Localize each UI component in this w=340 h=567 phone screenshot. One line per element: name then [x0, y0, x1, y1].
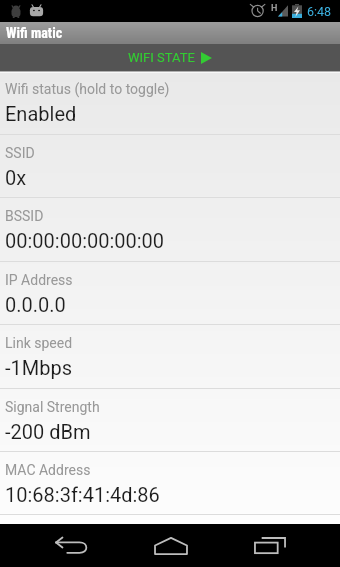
- button[interactable]: BSSID: [0, 198, 340, 262]
- button[interactable]: WIFI STATE: [0, 44, 340, 71]
- staticText: 6:48: [307, 4, 332, 19]
- button[interactable]: Home: [121, 524, 220, 567]
- button[interactable]: Wifi status (hold to toggle): [0, 71, 340, 135]
- button[interactable]: MAC Address: [0, 452, 340, 515]
- button[interactable]: Back: [22, 524, 121, 567]
- staticText: Link speed: [5, 335, 73, 351]
- staticText: 0.0.0.0: [5, 293, 66, 316]
- staticText: Wifi status (hold to toggle): [5, 81, 170, 97]
- button[interactable]: SSID: [0, 135, 340, 198]
- button[interactable]: Link speed: [0, 325, 340, 389]
- staticText: 00:00:00:00:00:00: [5, 229, 165, 252]
- staticText: BSSID: [5, 208, 44, 224]
- button[interactable]: Signal Strength: [0, 389, 340, 452]
- staticText: SSID: [5, 145, 35, 161]
- staticText: 0x: [5, 166, 27, 189]
- staticText: WIFI STATE: [128, 50, 195, 65]
- staticText: -1Mbps: [5, 356, 73, 379]
- staticText: IP Address: [5, 272, 73, 288]
- staticText: H: [271, 3, 278, 14]
- staticText: MAC Address: [5, 462, 91, 478]
- staticText: Signal Strength: [5, 399, 100, 415]
- staticText: Wifi matic: [6, 25, 63, 41]
- staticText: 10:68:3f:41:4d:86: [5, 483, 160, 506]
- button[interactable]: IP Address: [0, 262, 340, 325]
- staticText: Enabled: [5, 102, 77, 125]
- staticText: -200 dBm: [5, 420, 91, 443]
- button[interactable]: Recent apps: [220, 524, 319, 567]
